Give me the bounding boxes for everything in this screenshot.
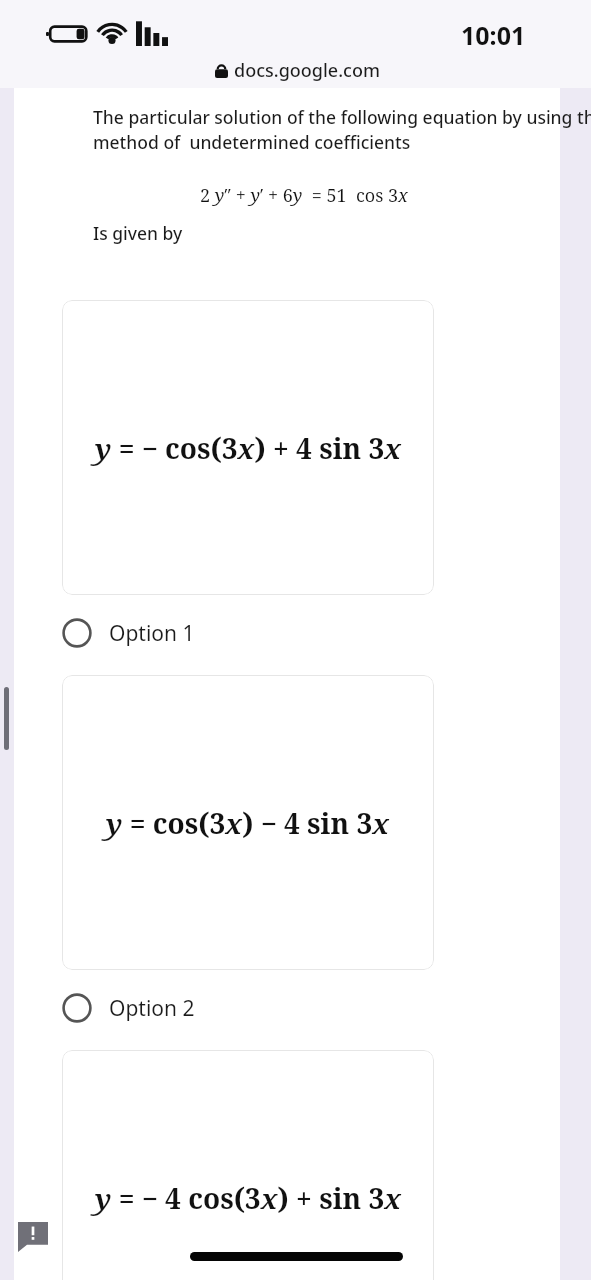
staticText: y = − 4 cos(3x) + sin 3x	[95, 1179, 402, 1217]
button[interactable]: y = − 4 cos(3x) + sin 3x	[62, 1050, 434, 1280]
staticText: y = cos(3x) − 4 sin 3x	[106, 804, 390, 842]
button[interactable]: Option 1	[62, 610, 362, 656]
staticText: y = − cos(3x) + 4 sin 3x	[95, 429, 402, 467]
staticText: Option 2	[109, 994, 195, 1023]
staticText: 2 y″ + y′ + 6y = 51 cos 3x	[200, 183, 408, 208]
button[interactable]: y = − cos(3x) + 4 sin 3x	[62, 300, 434, 595]
staticText: The particular solution of the following…	[93, 105, 591, 155]
button[interactable]: Site address docs.google.com	[215, 58, 380, 83]
button[interactable]: Option 2	[62, 985, 362, 1031]
staticText: Is given by	[93, 221, 183, 245]
button[interactable]: y = cos(3x) − 4 sin 3x	[62, 675, 434, 970]
staticText: Option 1	[109, 619, 195, 648]
staticText: 10:01	[461, 18, 526, 52]
staticText: docs.google.com	[234, 58, 380, 83]
button[interactable]: Comment	[18, 1222, 48, 1252]
